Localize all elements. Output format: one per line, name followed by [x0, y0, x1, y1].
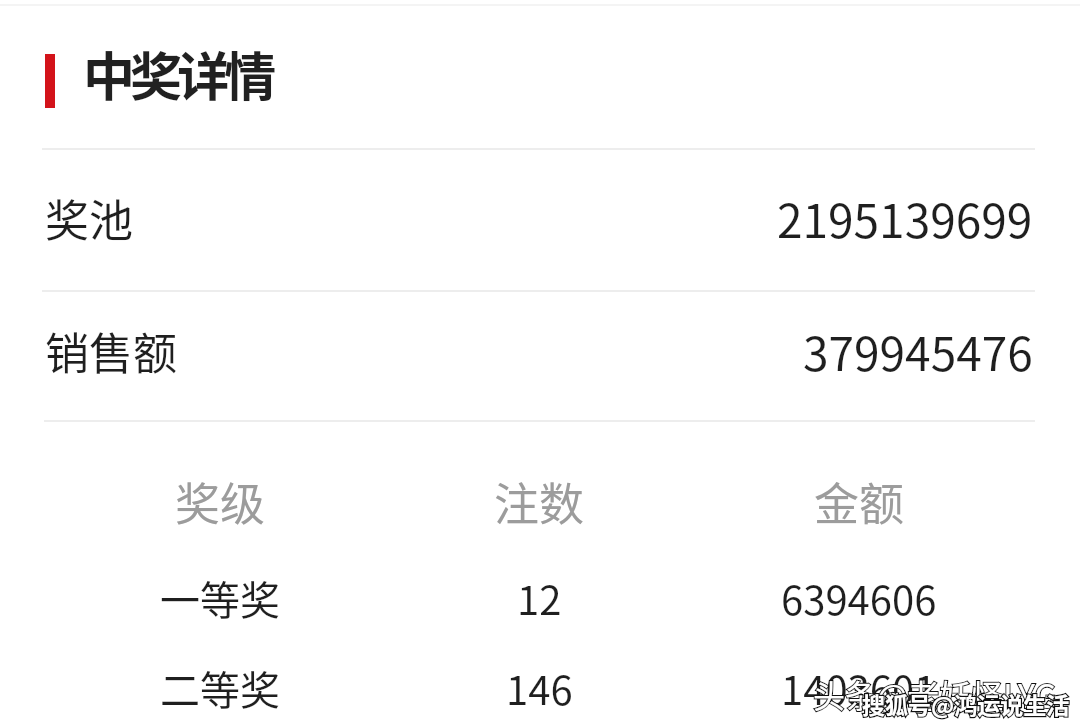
- button[interactable]: 146: [440, 643, 638, 727]
- staticText: 注数: [494, 469, 585, 534]
- staticText: 搜狐号@鸿运说生活: [862, 687, 1070, 720]
- staticText: 奖池: [45, 186, 133, 250]
- button[interactable]: 注数: [440, 456, 638, 546]
- staticText: 头条@老妖怪LYG: [813, 671, 1057, 717]
- staticText: 12: [517, 569, 562, 627]
- button[interactable]: 二等奖: [0, 643, 1080, 727]
- staticText: 1403601: [781, 659, 937, 717]
- button[interactable]: 一等奖: [0, 553, 1080, 643]
- staticText: 奖级: [175, 469, 266, 534]
- button[interactable]: 6394606: [638, 553, 1080, 643]
- staticText: 二等奖: [160, 659, 280, 717]
- button[interactable]: 一等奖: [0, 553, 440, 643]
- staticText: 6394606: [781, 569, 937, 627]
- button[interactable]: 销售额: [0, 287, 1080, 415]
- staticText: 379945476: [803, 318, 1033, 385]
- staticText: 一等奖: [160, 569, 280, 627]
- staticText: 搜狐号@鸿运说生活: [862, 687, 1070, 720]
- staticText: 金额: [814, 469, 905, 534]
- staticText: 2195139699: [777, 185, 1033, 252]
- staticText: 头条@老妖怪LYG: [813, 671, 1057, 717]
- button[interactable]: 奖级: [0, 456, 1080, 546]
- button[interactable]: 奖级: [0, 456, 440, 546]
- button[interactable]: 1403601: [638, 643, 1080, 727]
- button[interactable]: 12: [440, 553, 638, 643]
- button[interactable]: 金额: [638, 456, 1080, 546]
- button[interactable]: 中奖详情: [0, 24, 1080, 124]
- button[interactable]: 二等奖: [0, 643, 440, 727]
- staticText: 中奖详情: [83, 36, 272, 111]
- button[interactable]: 奖池: [0, 154, 1080, 282]
- staticText: 146: [506, 659, 573, 717]
- staticText: 销售额: [45, 319, 177, 383]
